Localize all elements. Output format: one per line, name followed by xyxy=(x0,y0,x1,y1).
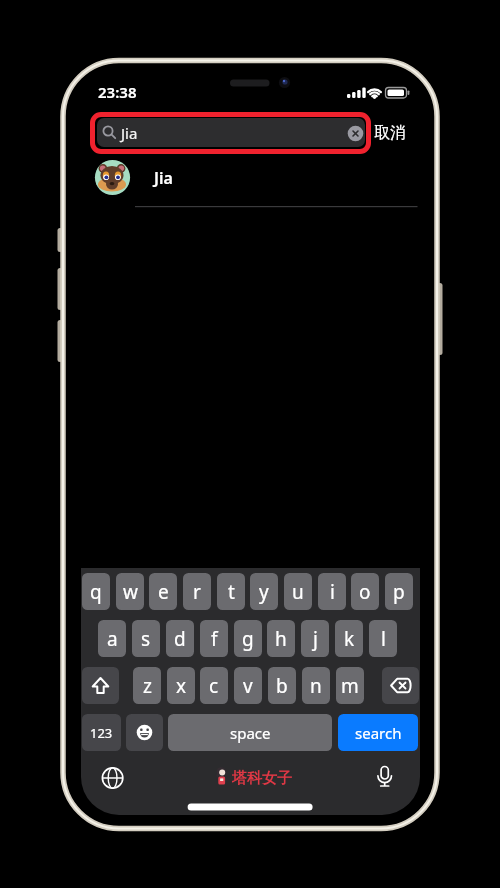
staticText: 23:38 xyxy=(98,82,137,98)
staticText: b xyxy=(276,673,288,699)
staticText: 取消 xyxy=(374,123,406,143)
staticText: f xyxy=(211,626,218,652)
button[interactable]: b xyxy=(268,667,296,704)
staticText: 123 xyxy=(90,724,113,742)
staticText: p xyxy=(393,579,405,605)
button[interactable]: 塔科女子 xyxy=(232,769,292,786)
button[interactable] xyxy=(126,714,163,751)
button[interactable]: 取消 xyxy=(373,121,407,145)
staticText: y xyxy=(259,579,269,605)
button[interactable]: u xyxy=(284,573,312,610)
button[interactable]: m xyxy=(336,667,364,704)
button[interactable] xyxy=(82,667,119,704)
staticText: j xyxy=(313,626,318,652)
button[interactable]: t xyxy=(217,573,245,610)
button[interactable]: l xyxy=(369,620,397,657)
staticText: q xyxy=(90,579,102,605)
staticText: m xyxy=(341,673,359,699)
staticText: z xyxy=(143,673,152,699)
staticText: Jia xyxy=(154,167,173,189)
button[interactable]: z xyxy=(133,667,161,704)
staticText: v xyxy=(243,673,253,699)
staticText: r xyxy=(193,579,201,605)
staticText: search xyxy=(355,723,402,743)
button[interactable]: o xyxy=(351,573,379,610)
staticText: i xyxy=(330,579,335,605)
staticText: o xyxy=(359,579,371,605)
button[interactable]: q xyxy=(82,573,110,610)
staticText: h xyxy=(275,626,287,652)
button[interactable]: v xyxy=(234,667,262,704)
staticText: 塔科女子 xyxy=(232,769,292,786)
button[interactable]: 123 xyxy=(82,714,121,751)
staticText: Jia xyxy=(121,123,138,143)
staticText: s xyxy=(141,626,151,652)
button[interactable]: f xyxy=(200,620,228,657)
button[interactable]: search xyxy=(338,714,418,751)
button[interactable]: d xyxy=(166,620,194,657)
button[interactable]: j xyxy=(301,620,329,657)
staticText: c xyxy=(209,673,219,699)
button[interactable]: s xyxy=(132,620,160,657)
button[interactable]: i xyxy=(318,573,346,610)
staticText: l xyxy=(381,626,386,652)
staticText: a xyxy=(107,626,118,652)
button[interactable]: y xyxy=(250,573,278,610)
button[interactable]: h xyxy=(267,620,295,657)
staticText: e xyxy=(158,579,169,605)
button[interactable]: n xyxy=(302,667,330,704)
button[interactable]: r xyxy=(183,573,211,610)
button[interactable]: Jia xyxy=(97,118,365,147)
button[interactable] xyxy=(382,667,419,704)
staticText: g xyxy=(242,626,254,652)
button[interactable]: k xyxy=(335,620,363,657)
button[interactable]: Jia xyxy=(92,157,420,199)
staticText: u xyxy=(292,579,304,605)
button[interactable]: space xyxy=(168,714,332,751)
button[interactable]: w xyxy=(116,573,144,610)
button[interactable]: g xyxy=(234,620,262,657)
staticText: w xyxy=(123,579,138,605)
staticText: d xyxy=(174,626,186,652)
staticText: k xyxy=(344,626,355,652)
button[interactable]: e xyxy=(149,573,177,610)
button[interactable]: x xyxy=(167,667,195,704)
button[interactable]: p xyxy=(385,573,413,610)
staticText: t xyxy=(228,579,235,605)
staticText: x xyxy=(176,673,187,699)
staticText: space xyxy=(230,723,271,743)
staticText: n xyxy=(310,673,322,699)
button[interactable]: a xyxy=(98,620,126,657)
button[interactable]: c xyxy=(200,667,228,704)
